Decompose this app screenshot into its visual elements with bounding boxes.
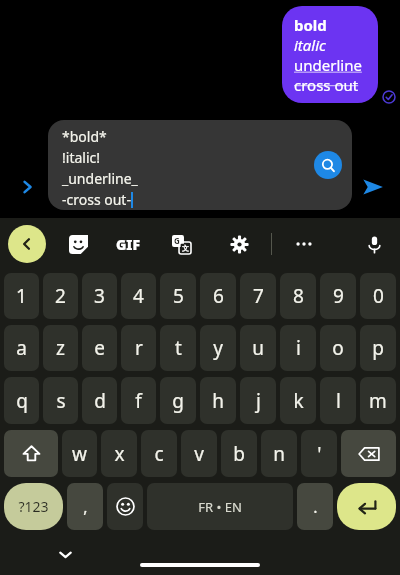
button[interactable]: Emoji bbox=[107, 483, 143, 530]
button[interactable]: t bbox=[160, 325, 196, 371]
staticText: i bbox=[296, 335, 301, 361]
button[interactable]: Search bbox=[314, 151, 342, 179]
staticText: d bbox=[94, 388, 106, 414]
staticText: w bbox=[72, 441, 87, 467]
staticText: n bbox=[273, 441, 285, 467]
button[interactable]: 2 bbox=[43, 273, 78, 319]
button[interactable]: Voice input bbox=[356, 226, 392, 262]
button[interactable]: y bbox=[200, 325, 236, 371]
staticText: underline bbox=[294, 55, 362, 75]
button[interactable]: ?123 bbox=[4, 483, 63, 530]
button[interactable]: 4 bbox=[121, 273, 156, 319]
staticText: g bbox=[172, 388, 184, 414]
button[interactable]: e bbox=[82, 325, 117, 371]
button[interactable]: p bbox=[360, 325, 396, 371]
button[interactable]: Shift bbox=[4, 430, 58, 477]
staticText: bold bbox=[294, 15, 327, 35]
staticText: y bbox=[213, 335, 223, 361]
button[interactable]: 1 bbox=[4, 273, 39, 319]
staticText: !italic! bbox=[62, 148, 100, 167]
button[interactable]: h bbox=[200, 377, 236, 424]
button[interactable]: o bbox=[320, 325, 356, 371]
staticText: h bbox=[212, 388, 224, 414]
button[interactable]: d bbox=[82, 377, 117, 424]
button[interactable]: 0 bbox=[360, 273, 396, 319]
staticText: _underline_ bbox=[62, 169, 138, 188]
button[interactable]: z bbox=[43, 325, 78, 371]
staticText: t bbox=[175, 335, 182, 361]
staticText: 4 bbox=[133, 283, 144, 309]
button[interactable]: s bbox=[43, 377, 78, 424]
button[interactable]: l bbox=[320, 377, 356, 424]
button[interactable]: k bbox=[280, 377, 316, 424]
staticText: 8 bbox=[293, 283, 304, 309]
button[interactable]: 6 bbox=[200, 273, 236, 319]
button[interactable]: GIF bbox=[116, 226, 141, 262]
staticText: s bbox=[56, 388, 66, 414]
button[interactable]: b bbox=[221, 430, 257, 477]
button[interactable]: 8 bbox=[280, 273, 316, 319]
button[interactable]: x bbox=[101, 430, 137, 477]
button[interactable]: Send bbox=[358, 172, 388, 202]
button[interactable]: 5 bbox=[160, 273, 196, 319]
staticText: GIF bbox=[116, 235, 141, 254]
button[interactable]: n bbox=[261, 430, 297, 477]
button[interactable]: FR • EN bbox=[147, 483, 293, 530]
staticText: *bold* bbox=[62, 127, 107, 146]
button[interactable]: g bbox=[160, 377, 196, 424]
button[interactable]: r bbox=[121, 325, 156, 371]
button[interactable]: More options bbox=[286, 226, 322, 262]
button[interactable]: c bbox=[141, 430, 177, 477]
staticText: v bbox=[194, 441, 204, 467]
button[interactable]: i bbox=[280, 325, 316, 371]
button[interactable]: ' bbox=[301, 430, 337, 477]
button[interactable]: Previous bbox=[14, 174, 40, 200]
staticText: cross out bbox=[294, 75, 359, 95]
staticText: z bbox=[56, 335, 65, 361]
staticText: G bbox=[174, 235, 180, 246]
button[interactable]: m bbox=[360, 377, 396, 424]
staticText: ' bbox=[317, 441, 322, 467]
staticText: italic bbox=[294, 35, 326, 55]
staticText: -cross out- bbox=[62, 190, 131, 209]
button[interactable]: w bbox=[62, 430, 97, 477]
button[interactable]: 7 bbox=[240, 273, 276, 319]
button[interactable]: j bbox=[240, 377, 276, 424]
staticText: ?123 bbox=[18, 497, 49, 516]
button[interactable]: Translate bbox=[163, 226, 199, 262]
staticText: 3 bbox=[94, 283, 105, 309]
staticText: 2 bbox=[55, 283, 66, 309]
staticText: q bbox=[16, 388, 28, 414]
button[interactable]: Back bbox=[8, 225, 46, 263]
staticText: u bbox=[252, 335, 264, 361]
button[interactable]: a bbox=[4, 325, 39, 371]
staticText: r bbox=[135, 335, 143, 361]
button[interactable]: *bold* bbox=[48, 120, 352, 210]
staticText: . bbox=[313, 496, 318, 518]
button[interactable]: f bbox=[121, 377, 156, 424]
staticText: 0 bbox=[373, 283, 384, 309]
staticText: k bbox=[293, 388, 304, 414]
staticText: j bbox=[256, 388, 261, 414]
button[interactable]: Backspace bbox=[341, 430, 396, 477]
button[interactable]: Hide keyboard bbox=[50, 539, 80, 569]
staticText: b bbox=[233, 441, 245, 467]
staticText: 1 bbox=[16, 283, 27, 309]
button[interactable]: . bbox=[297, 483, 333, 530]
button[interactable]: , bbox=[67, 483, 103, 530]
staticText: 5 bbox=[173, 283, 184, 309]
button[interactable]: q bbox=[4, 377, 39, 424]
button[interactable]: v bbox=[181, 430, 217, 477]
button[interactable]: Enter bbox=[337, 483, 396, 530]
staticText: 文 bbox=[182, 244, 189, 253]
staticText: m bbox=[369, 388, 387, 414]
button[interactable]: Settings bbox=[221, 226, 257, 262]
button[interactable]: bold bbox=[282, 6, 378, 103]
button[interactable]: u bbox=[240, 325, 276, 371]
staticText: e bbox=[94, 335, 105, 361]
button[interactable]: 3 bbox=[82, 273, 117, 319]
button[interactable]: 9 bbox=[320, 273, 356, 319]
staticText: , bbox=[83, 496, 88, 518]
button[interactable]: Stickers bbox=[60, 226, 96, 262]
staticText: 7 bbox=[253, 283, 264, 309]
